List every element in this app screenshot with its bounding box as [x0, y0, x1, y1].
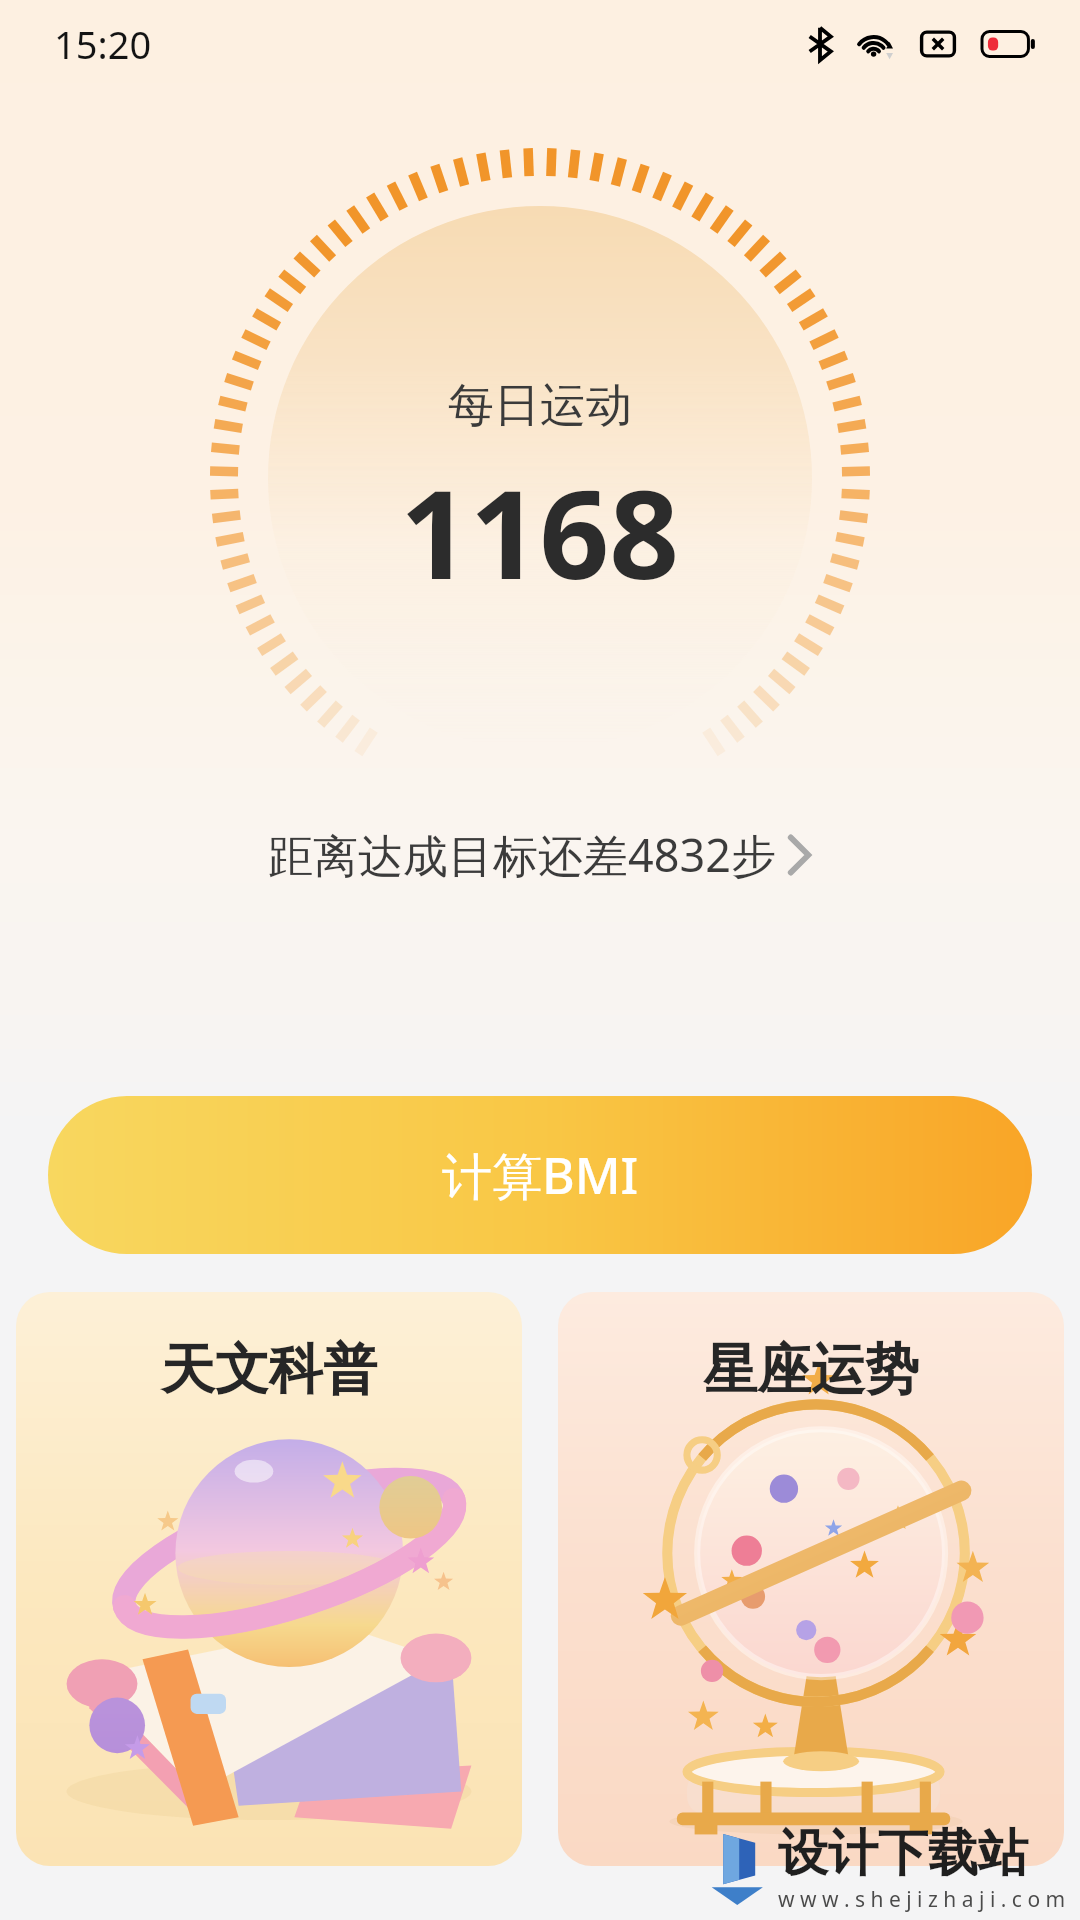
staticText: 设计下载站	[778, 1822, 1028, 1885]
button[interactable]: 天文科普	[16, 1292, 522, 1866]
staticText: 每日运动	[448, 377, 632, 435]
staticText: 15:20	[54, 18, 152, 70]
staticText: 距离达成目标还差4832步	[268, 824, 776, 885]
button[interactable]: 距离达成目标还差4832步	[256, 816, 824, 893]
staticText: 1168	[400, 449, 680, 615]
staticText: 星座运势	[703, 1336, 919, 1404]
button[interactable]: 星座运势	[558, 1292, 1064, 1866]
staticText: 计算BMI	[442, 1141, 639, 1209]
staticText: 天文科普	[161, 1336, 377, 1404]
staticText: w w w . s h e j i z h a j i . c o m	[778, 1885, 1066, 1914]
button[interactable]: 计算BMI	[48, 1096, 1032, 1254]
